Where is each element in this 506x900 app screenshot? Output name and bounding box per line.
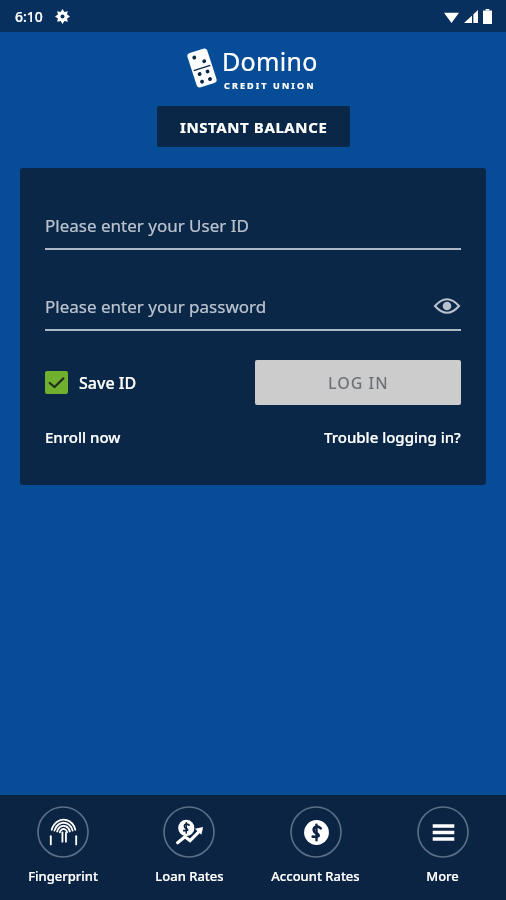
button[interactable]: More (379, 795, 506, 900)
staticText: Account Rates (271, 867, 360, 885)
button[interactable]: Trouble logging in? (324, 427, 461, 447)
staticText: Please enter your User ID (45, 214, 249, 237)
staticText: INSTANT BALANCE (180, 117, 328, 137)
staticText: Fingerprint (28, 867, 98, 885)
button[interactable]: Save ID (45, 371, 137, 394)
button[interactable]: Please enter your password (45, 292, 461, 331)
staticText: 6:10 (15, 7, 43, 26)
staticText: LOG IN (328, 372, 389, 394)
button[interactable]: Please enter your User ID (45, 214, 461, 250)
button[interactable]: Enroll now (45, 427, 121, 447)
button[interactable]: Show password (433, 292, 461, 320)
button[interactable]: INSTANT BALANCE (157, 106, 350, 147)
staticText: Save ID (79, 372, 137, 394)
button[interactable]: Loan Rates (126, 795, 252, 900)
staticText: Trouble logging in? (324, 427, 461, 447)
staticText: More (426, 867, 459, 885)
button[interactable]: Account Rates (252, 795, 379, 900)
staticText: Please enter your password (45, 295, 433, 318)
button[interactable]: LOG IN (255, 360, 461, 405)
staticText: Domino (222, 44, 318, 78)
staticText: Loan Rates (155, 867, 224, 885)
staticText: CREDIT UNION (224, 79, 316, 91)
button[interactable]: Fingerprint (0, 795, 126, 900)
staticText: Enroll now (45, 427, 121, 447)
